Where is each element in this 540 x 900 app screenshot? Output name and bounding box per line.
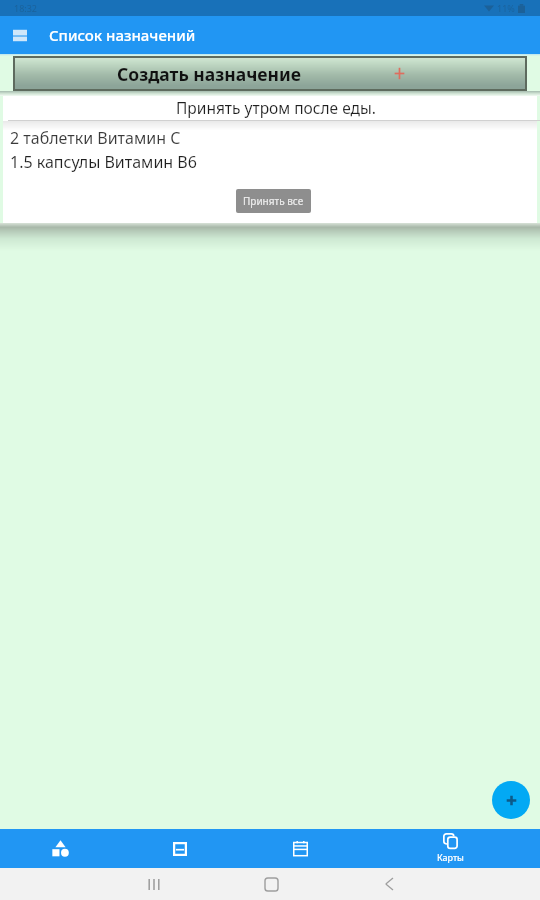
button[interactable]: Categories: [0, 829, 120, 868]
staticText: 11%: [497, 2, 515, 14]
button[interactable]: Карты: [360, 829, 540, 868]
button[interactable]: Add: [492, 781, 530, 819]
button[interactable]: Menu: [13, 29, 27, 42]
button[interactable]: Home: [258, 871, 284, 897]
staticText: 18:32: [14, 2, 38, 14]
button[interactable]: Recents: [141, 871, 167, 897]
staticText: 2 таблетки Витамин C: [10, 127, 181, 149]
staticText: Создать назначение: [117, 62, 301, 86]
button[interactable]: Calendar: [240, 829, 360, 868]
staticText: Принять все: [243, 194, 304, 208]
staticText: Карты: [437, 851, 464, 863]
button[interactable]: Принять все: [243, 194, 304, 208]
staticText: 1.5 капсулы Витамин B6: [10, 151, 197, 173]
staticText: Список назначений: [49, 25, 196, 45]
button[interactable]: Создать назначение: [13, 56, 527, 91]
button[interactable]: Принять утром после еды.: [3, 96, 537, 120]
button[interactable]: Notes: [120, 829, 240, 868]
staticText: Принять утром после еды.: [176, 97, 376, 118]
button[interactable]: Back: [376, 871, 402, 897]
